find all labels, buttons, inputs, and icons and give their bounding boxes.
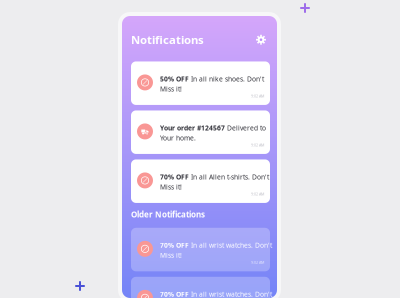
staticText: Your order #124567 Delivered to	[160, 123, 266, 132]
staticText: Miss it!	[160, 84, 182, 93]
button[interactable]: 70% OFF In all wrist watches. Don't	[131, 277, 270, 300]
button[interactable]: 70% OFF In all Allen t-shirts. Don't	[131, 159, 270, 203]
staticText: 9:02 AM	[251, 93, 264, 98]
staticText: Miss it!	[160, 251, 182, 260]
staticText: 70% OFF In all wrist watches. Don't	[160, 290, 272, 299]
button[interactable]: 70% OFF In all wrist watches. Don't	[131, 228, 270, 271]
staticText: Older Notifications	[131, 209, 205, 220]
staticText: 70% OFF In all Allen t-shirts. Don't	[160, 172, 269, 181]
button[interactable]: 50% OFF In all nike shoes. Don't	[131, 61, 270, 105]
staticText: Your home.	[160, 133, 196, 142]
staticText: 9:02 AM	[251, 260, 264, 265]
staticText: 9:02 AM	[251, 142, 264, 147]
staticText: 70% OFF In all wrist watches. Don't	[160, 241, 272, 250]
staticText: Notifications	[131, 32, 204, 47]
staticText: Miss it!	[160, 182, 182, 191]
button[interactable]: Your order #124567 Delivered to	[131, 110, 270, 154]
button[interactable]: Settings	[254, 33, 268, 47]
staticText: 9:02 AM	[251, 191, 264, 196]
staticText: 50% OFF In all nike shoes. Don't	[160, 74, 264, 83]
